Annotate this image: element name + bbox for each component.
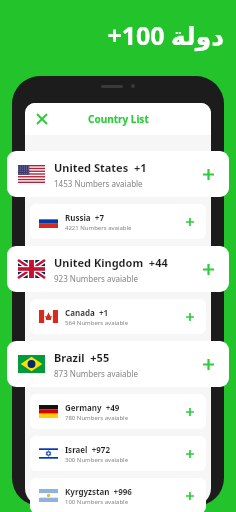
staticText: Israel +972: [65, 444, 110, 455]
staticText: 564 Numbers avaiable: [65, 319, 129, 327]
button[interactable]: Close: [29, 106, 55, 132]
button[interactable]: Add Israel: [182, 446, 197, 461]
staticText: United Kingdom +44: [54, 255, 168, 270]
staticText: Germany +49: [65, 402, 120, 413]
button[interactable]: Add Germany: [182, 404, 197, 419]
button[interactable]: Add Kyrgyzstan: [182, 488, 197, 503]
staticText: Russia +7: [65, 212, 104, 223]
staticText: 780 Numbers avaiable: [65, 414, 129, 422]
button[interactable]: United Kingdom +44: [7, 246, 229, 292]
button[interactable]: Israel +972: [30, 436, 206, 471]
staticText: 4221 Numbers avaiable: [65, 224, 132, 232]
staticText: 100 Numbers avaiable: [65, 498, 129, 506]
button[interactable]: Add Brazil: [198, 354, 218, 374]
staticText: Canada +1: [65, 307, 109, 318]
staticText: 1453 Numbers avaiable: [54, 178, 143, 189]
button[interactable]: Add Russia: [182, 214, 197, 229]
button[interactable]: Brazil +55: [7, 341, 229, 387]
staticText: 923 Numbers avaiable: [54, 273, 139, 284]
staticText: 873 Numbers avaiable: [54, 368, 139, 379]
staticText: Brazil +55: [54, 350, 110, 365]
staticText: +100 دولة: [0, 18, 224, 52]
staticText: Country List: [88, 112, 149, 126]
button[interactable]: Add Canada: [182, 309, 197, 324]
button[interactable]: Germany +49: [30, 394, 206, 429]
button[interactable]: Kyrgyzstan +996: [30, 478, 206, 512]
button[interactable]: Add United Kingdom: [198, 259, 218, 279]
staticText: 300 Numbers avaiable: [65, 456, 129, 464]
button[interactable]: Russia +7: [30, 204, 206, 239]
button[interactable]: United States +1: [7, 151, 229, 197]
button[interactable]: Canada +1: [30, 299, 206, 334]
button[interactable]: Add United States: [198, 164, 218, 184]
staticText: United States +1: [54, 160, 147, 175]
staticText: Kyrgyzstan +996: [65, 486, 132, 497]
